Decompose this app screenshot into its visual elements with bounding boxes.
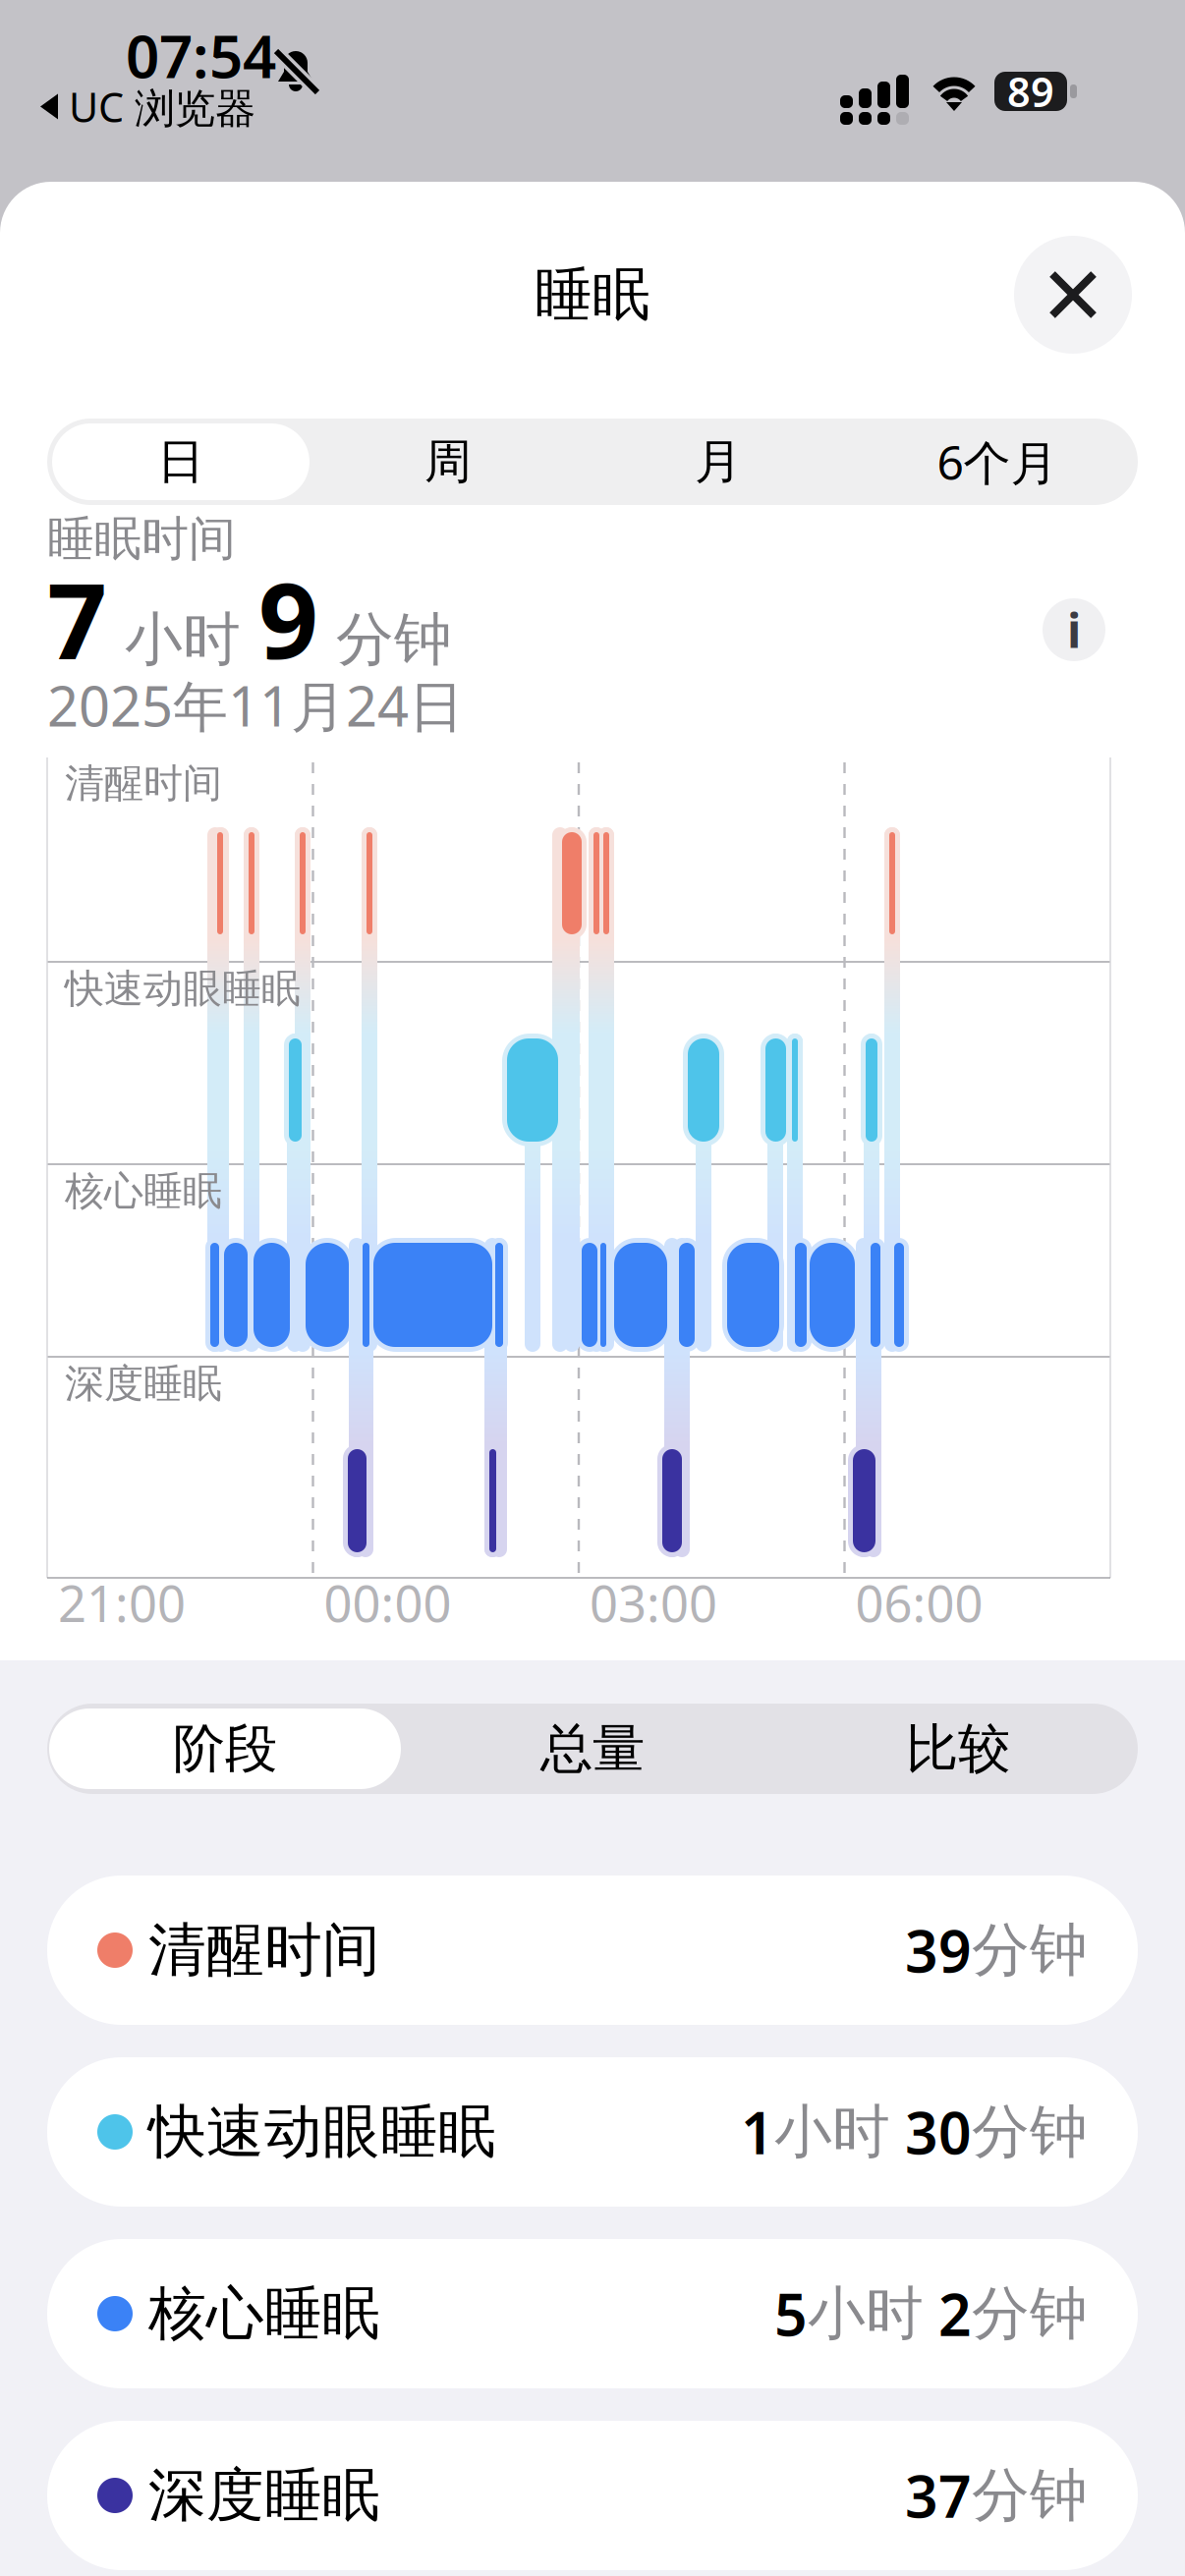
staticText: 深度睡眠 (65, 1360, 222, 1408)
staticText: 快速动眼睡眠 (148, 2097, 496, 2167)
staticText: 06:00 (855, 1570, 983, 1636)
staticText: 深度睡眠 (148, 2460, 380, 2531)
staticText: 2025年11月24日 (47, 669, 464, 742)
staticText: 日 (157, 433, 204, 491)
staticText: 07:54 (126, 16, 276, 94)
staticText: 分钟 (318, 604, 452, 675)
staticText: 周 (424, 433, 472, 491)
button[interactable]: 清醒时间 (47, 1876, 1138, 2025)
staticText: 6个月 (937, 430, 1058, 493)
staticText: 1 (741, 2094, 774, 2170)
staticText: 分钟 (972, 2460, 1088, 2531)
staticText: 37 (905, 2457, 972, 2534)
button[interactable]: 关闭 (1014, 236, 1132, 354)
staticText: 小时 (107, 604, 258, 675)
staticText: 阶段 (173, 1717, 277, 1781)
button[interactable]: 周 (315, 419, 581, 505)
staticText: 睡眠时间 (47, 510, 236, 568)
staticText: UC 浏览器 (69, 79, 255, 134)
staticText: 清醒时间 (65, 759, 222, 808)
staticText: 小时 (774, 2097, 890, 2167)
staticText: 快速动眼睡眠 (65, 965, 301, 1013)
button[interactable]: 阶段 (45, 1704, 405, 1794)
button[interactable]: 6个月 (865, 419, 1130, 505)
button[interactable]: 快速动眼睡眠 (47, 2057, 1138, 2207)
button[interactable]: 月 (586, 419, 851, 505)
button[interactable]: 日 (48, 419, 313, 505)
staticText: 核心睡眠 (65, 1167, 222, 1215)
staticText: 核心睡眠 (148, 2278, 380, 2349)
staticText: 89 (1007, 64, 1054, 118)
button[interactable]: 信息 (1043, 598, 1105, 661)
staticText: 21:00 (58, 1570, 186, 1636)
staticText: 分钟 (972, 1915, 1088, 1986)
button[interactable]: 深度睡眠 (47, 2421, 1138, 2570)
button[interactable]: 核心睡眠 (47, 2239, 1138, 2388)
staticText: 2 (924, 2275, 972, 2352)
staticText: 9 (258, 549, 318, 688)
staticText: 小时 (808, 2278, 924, 2349)
staticText: 39 (905, 1912, 972, 1988)
button[interactable]: 比较 (778, 1704, 1138, 1794)
staticText: 清醒时间 (148, 1915, 380, 1986)
staticText: 睡眠 (535, 259, 650, 330)
staticText: 7 (47, 549, 107, 688)
staticText: 00:00 (324, 1570, 451, 1636)
staticText: 分钟 (972, 2097, 1088, 2167)
staticText: 分钟 (972, 2278, 1088, 2349)
staticText: 总量 (540, 1717, 645, 1781)
staticText: i (1067, 598, 1081, 661)
staticText: 03:00 (590, 1570, 717, 1636)
staticText: 5 (774, 2275, 808, 2352)
staticText: 30 (890, 2094, 972, 2170)
button[interactable]: 总量 (413, 1704, 772, 1794)
staticText: 比较 (906, 1717, 1010, 1781)
staticText: 月 (695, 433, 742, 491)
